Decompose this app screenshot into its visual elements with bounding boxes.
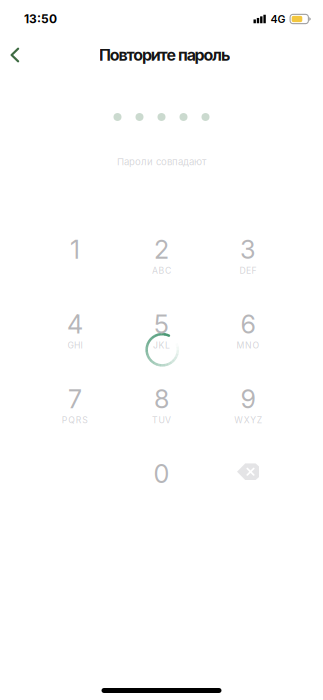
staticText: 9 bbox=[240, 384, 255, 414]
staticText: 8 bbox=[154, 384, 169, 414]
staticText: 4G bbox=[270, 12, 285, 25]
button[interactable]: Delete bbox=[205, 459, 291, 501]
staticText: GHI bbox=[68, 340, 82, 351]
button[interactable]: 2 bbox=[118, 235, 204, 277]
staticText: 7 bbox=[68, 384, 82, 414]
staticText: 0 bbox=[153, 458, 169, 489]
staticText: PQRS bbox=[62, 415, 88, 425]
button[interactable]: Back bbox=[0, 39, 35, 71]
button[interactable]: 6 bbox=[205, 309, 291, 351]
button[interactable]: 8 bbox=[118, 384, 204, 426]
staticText: 4 bbox=[67, 309, 83, 340]
staticText: Пароли совпадают bbox=[117, 156, 206, 168]
button[interactable]: 0 bbox=[118, 459, 204, 501]
staticText: JKL bbox=[153, 340, 170, 351]
staticText: WXYZ bbox=[234, 415, 262, 425]
button[interactable]: 5 bbox=[118, 309, 204, 351]
button[interactable]: 7 bbox=[32, 384, 118, 426]
staticText: 3 bbox=[240, 234, 256, 265]
button[interactable]: 1 bbox=[32, 235, 118, 277]
staticText: 2 bbox=[154, 234, 169, 265]
staticText: 1 bbox=[70, 234, 80, 265]
staticText: MNO bbox=[237, 340, 259, 351]
button[interactable]: 4 bbox=[32, 309, 118, 351]
staticText: 13:50 bbox=[24, 12, 57, 26]
staticText: 5 bbox=[154, 309, 169, 340]
button[interactable]: 3 bbox=[205, 235, 291, 277]
staticText: DEF bbox=[240, 265, 256, 276]
staticText: Повторите пароль bbox=[99, 45, 230, 65]
staticText: 6 bbox=[240, 309, 255, 340]
staticText: TUV bbox=[152, 415, 171, 425]
button[interactable]: 9 bbox=[205, 384, 291, 426]
staticText: ABC bbox=[152, 265, 171, 276]
